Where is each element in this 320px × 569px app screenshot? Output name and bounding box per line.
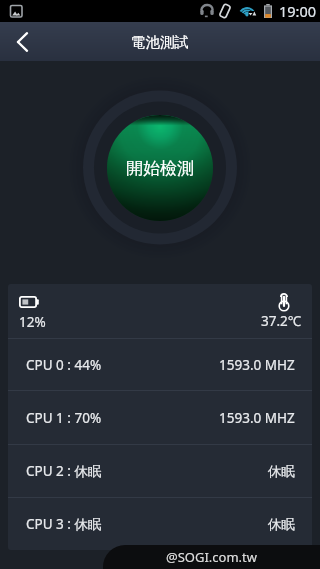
staticText: 休眠 (268, 463, 295, 480)
staticText: 休眠 (268, 516, 295, 533)
button[interactable]: CPU 1 : 70% (8, 391, 312, 444)
staticText: 開始檢測 (126, 158, 194, 179)
staticText: CPU 3 : 休眠 (26, 515, 102, 533)
button[interactable]: CPU 0 : 44% (8, 339, 312, 390)
button[interactable]: CPU 3 : 休眠 (8, 498, 312, 550)
button[interactable]: CPU 2 : 休眠 (8, 445, 312, 497)
staticText: 電池測試 (131, 33, 189, 51)
button[interactable]: Back (0, 22, 44, 61)
staticText: 1593.0 MHZ (219, 356, 295, 374)
staticText: 19:00 (279, 1, 317, 21)
staticText: 37.2℃ (261, 312, 302, 330)
button[interactable]: 12% (8, 284, 312, 338)
staticText: 12% (19, 313, 46, 331)
staticText: CPU 2 : 休眠 (26, 462, 102, 480)
staticText: 1593.0 MHZ (219, 409, 295, 427)
staticText: CPU 0 : 44% (26, 356, 102, 374)
staticText: CPU 1 : 70% (26, 409, 102, 427)
staticText: @SOGI.com.tw (166, 548, 257, 566)
button[interactable]: 開始檢測 (107, 115, 213, 221)
